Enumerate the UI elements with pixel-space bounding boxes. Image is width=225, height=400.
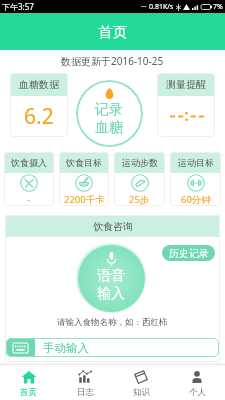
staticText: 饮食咨询 (93, 220, 133, 233)
staticText: 血糖 (95, 119, 123, 137)
staticText: 知识 (133, 387, 150, 398)
staticText: 测量提醒 (166, 78, 206, 91)
button[interactable]: 历史记录 (162, 245, 215, 261)
staticText: 运动目标 (178, 157, 214, 168)
button[interactable]: 个人 (169, 366, 225, 400)
staticText: 25步 (129, 193, 150, 206)
staticText: - (27, 193, 31, 206)
staticText: 语音 (97, 267, 125, 285)
button[interactable]: 血糖数据 (10, 73, 68, 137)
staticText: 运动步数 (122, 157, 158, 168)
staticText: 个人 (189, 387, 206, 398)
button[interactable]: 饮食摄入 (4, 152, 54, 206)
staticText: 数据更新于2016-10-25 (61, 54, 164, 68)
button[interactable] (76, 80, 143, 147)
staticText: 6.2 (24, 102, 54, 131)
staticText: 首页 (98, 23, 127, 41)
button[interactable]: 饮食目标 (59, 152, 109, 206)
staticText: 下午3:57 (2, 1, 34, 12)
staticText: 0.81K/s (149, 2, 174, 12)
staticText: 60分钟 (181, 193, 211, 206)
staticText: 饮食目标 (66, 157, 102, 168)
staticText: 手动输入 (43, 341, 89, 355)
staticText: 记录 (95, 101, 123, 119)
staticText: 饮食摄入 (11, 157, 47, 168)
staticText: 日志 (77, 387, 94, 398)
button[interactable]: 首页 (0, 366, 57, 400)
staticText: 7% (213, 2, 223, 12)
button[interactable]: 运动目标 (170, 152, 221, 206)
button[interactable] (78, 245, 145, 312)
staticText: 输入 (97, 285, 125, 303)
staticText: ··· (141, 2, 147, 12)
button[interactable]: 日志 (57, 366, 113, 400)
button[interactable]: 知识 (113, 366, 169, 400)
button[interactable]: 运动步数 (114, 152, 165, 206)
button[interactable]: 手动输入 (6, 338, 219, 357)
staticText: 血糖数据 (19, 78, 59, 91)
button[interactable]: 测量提醒 (157, 73, 215, 137)
staticText: 2200千卡 (64, 193, 105, 206)
staticText: 请输入食物名称，如：西红柿 (57, 317, 168, 328)
staticText: 首页 (20, 387, 37, 398)
staticText: 历史记录 (169, 247, 209, 260)
